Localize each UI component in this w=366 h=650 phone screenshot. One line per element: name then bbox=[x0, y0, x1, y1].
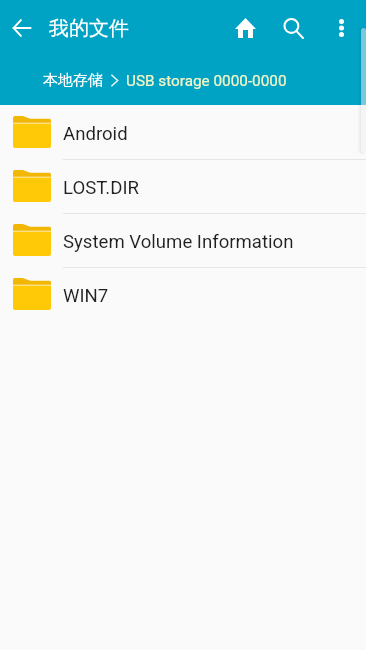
staticText: 我的文件 bbox=[49, 16, 129, 41]
staticText: System Volume Information bbox=[63, 231, 294, 253]
button[interactable]: Home bbox=[221, 4, 269, 52]
staticText: 本地存储 bbox=[43, 71, 103, 90]
staticText: USB storage 0000-0000 bbox=[126, 72, 287, 90]
staticText: Android bbox=[63, 123, 128, 145]
button[interactable]: More options bbox=[317, 4, 365, 52]
button[interactable]: USB storage 0000-0000 bbox=[126, 72, 287, 90]
button[interactable]: Android bbox=[0, 105, 366, 159]
staticText: WIN7 bbox=[63, 285, 109, 307]
button[interactable]: Back bbox=[4, 10, 40, 46]
button[interactable]: WIN7 bbox=[0, 267, 366, 321]
button[interactable]: System Volume Information bbox=[0, 213, 366, 267]
button[interactable]: 本地存储 bbox=[43, 71, 103, 90]
staticText: LOST.DIR bbox=[63, 177, 139, 199]
button[interactable]: LOST.DIR bbox=[0, 159, 366, 213]
button[interactable]: Search bbox=[269, 4, 317, 52]
